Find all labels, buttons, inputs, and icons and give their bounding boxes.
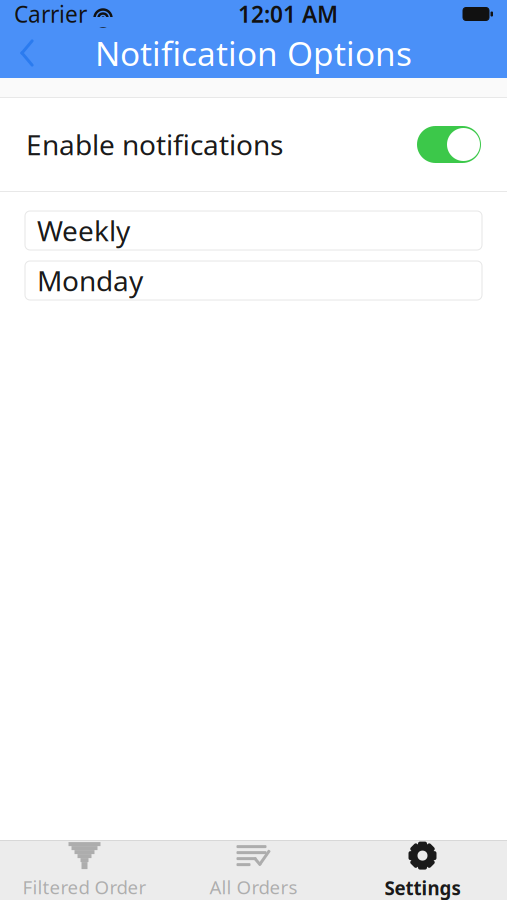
button[interactable]: Weekly xyxy=(25,211,482,250)
button[interactable]: Enable notifications xyxy=(0,98,507,191)
staticText: Monday xyxy=(37,262,143,299)
button[interactable]: All Orders xyxy=(169,841,338,900)
button[interactable]: Filtered Order xyxy=(0,841,169,900)
staticText: All Orders xyxy=(209,875,297,899)
staticText: Weekly xyxy=(37,212,130,249)
button[interactable]: Back xyxy=(0,28,54,78)
staticText: Filtered Order xyxy=(22,875,146,899)
staticText: Notification Options xyxy=(95,31,412,75)
staticText: Enable notifications xyxy=(26,126,283,163)
staticText: Carrier xyxy=(14,0,87,29)
staticText: 12:01 AM xyxy=(238,0,338,29)
button[interactable]: Settings xyxy=(338,841,507,900)
button[interactable]: Enable notifications toggle xyxy=(417,126,481,163)
staticText: Settings xyxy=(384,876,460,900)
button[interactable]: Monday xyxy=(25,261,482,300)
